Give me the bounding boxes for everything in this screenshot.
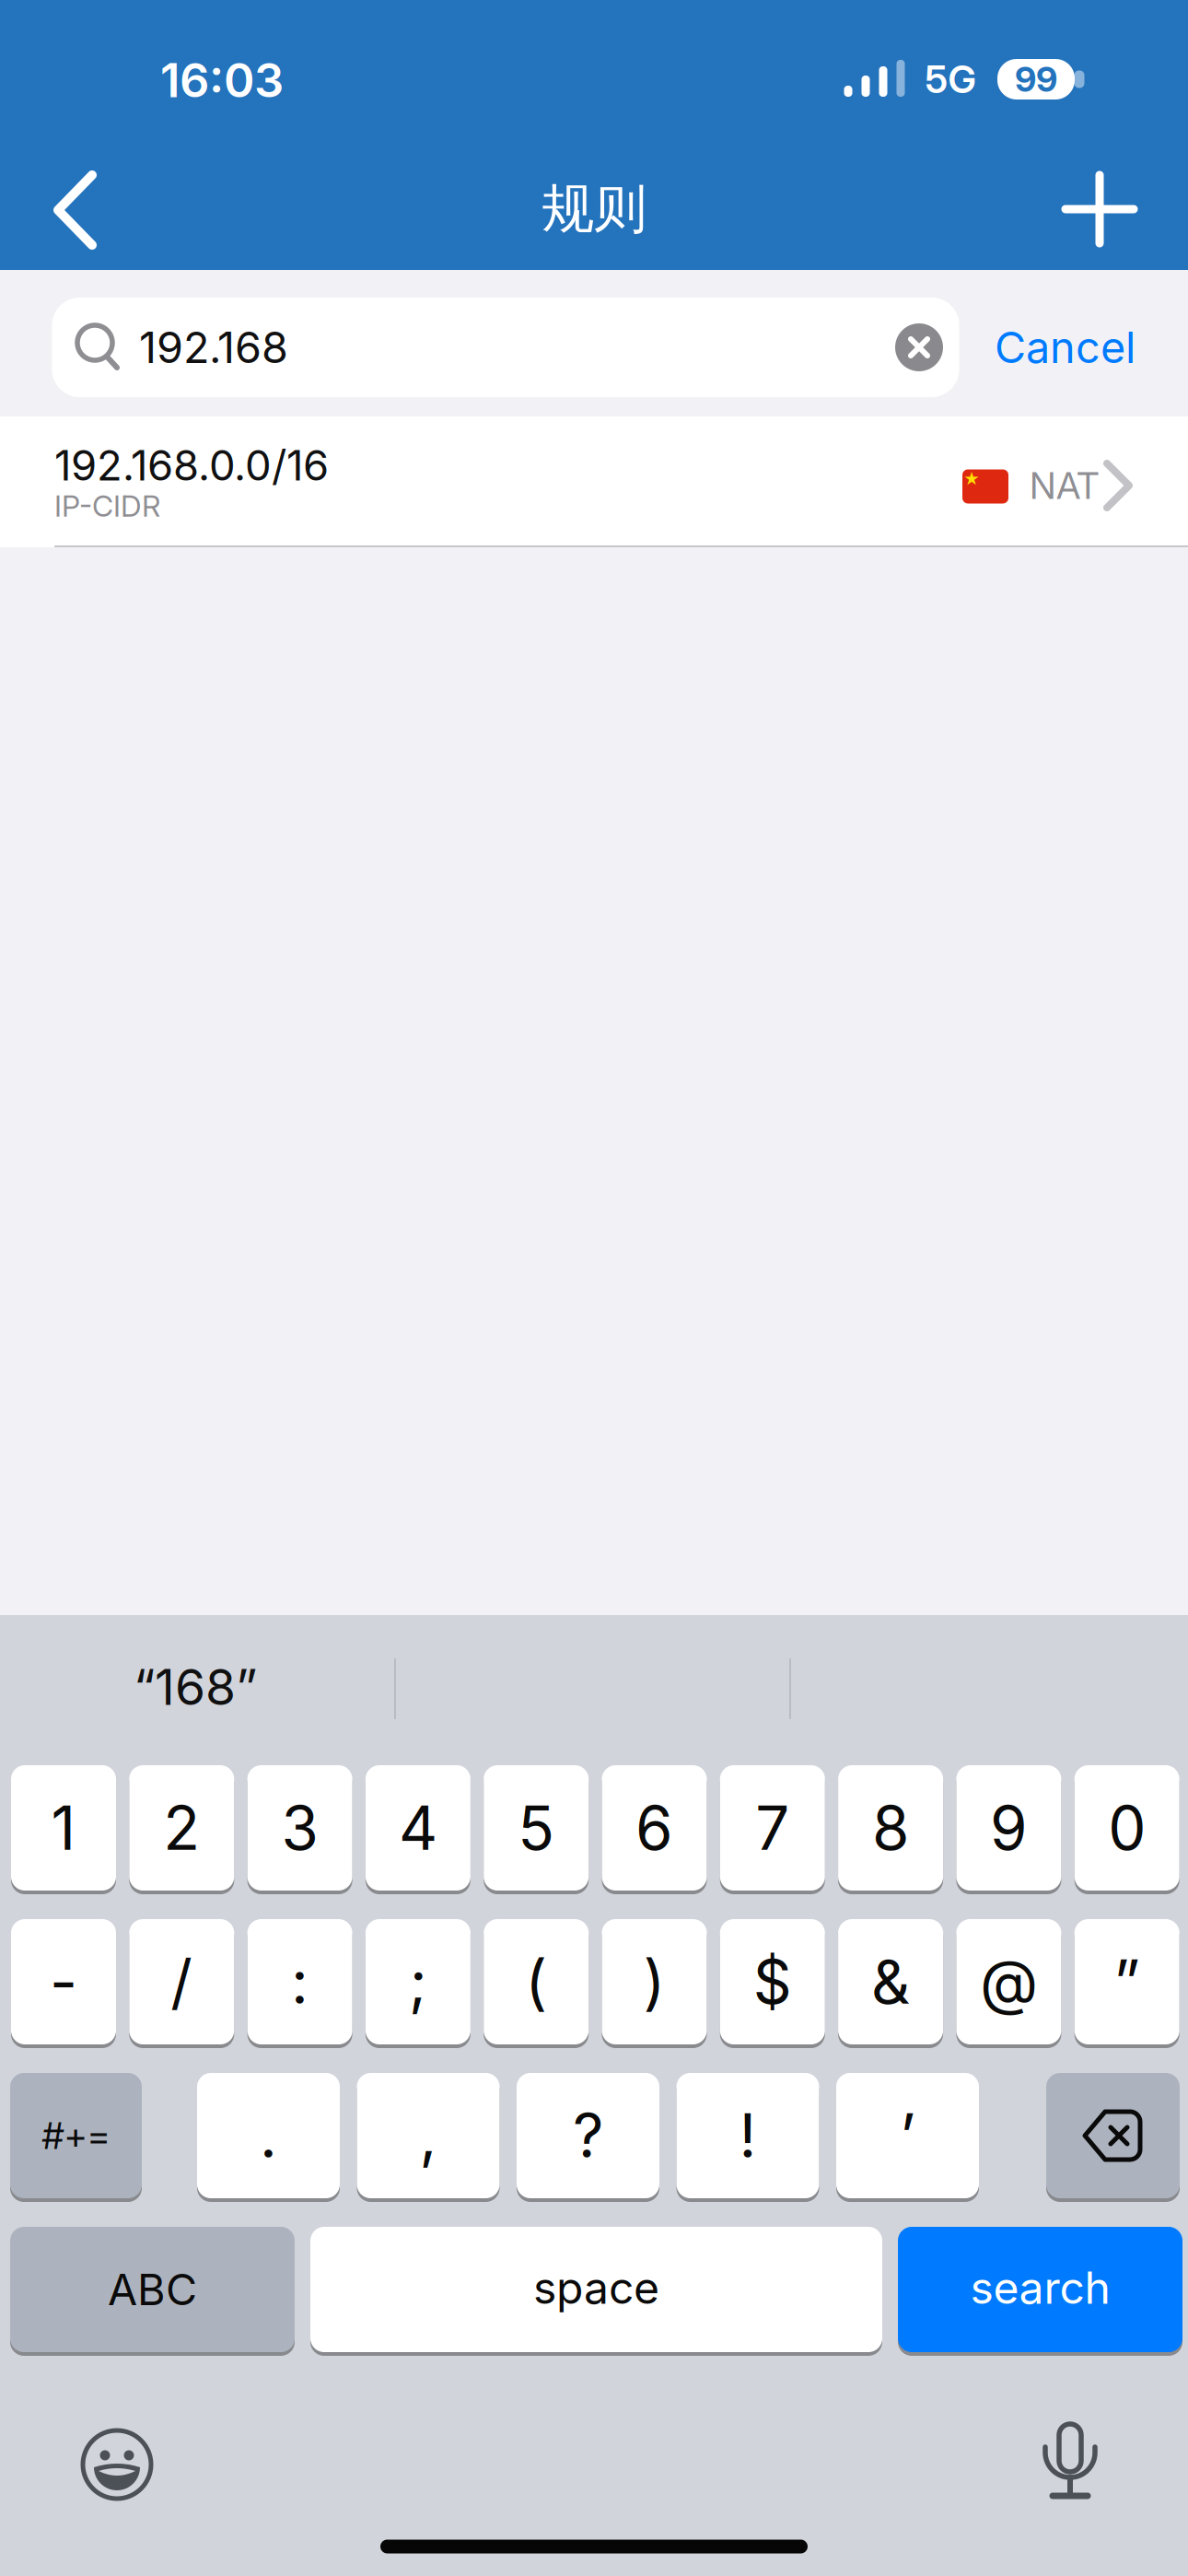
staticText: ( — [525, 1946, 547, 2017]
staticText: space — [533, 2262, 659, 2314]
button[interactable]: ! — [676, 2073, 819, 2198]
button[interactable]: & — [838, 1919, 943, 2044]
button[interactable]: 2 — [129, 1765, 234, 1891]
staticText: 0 — [1108, 1792, 1146, 1863]
staticText: ABC — [108, 2264, 197, 2315]
staticText: 192.168.0.0/16 — [54, 441, 329, 490]
button[interactable]: 7 — [720, 1765, 825, 1891]
staticText: Cancel — [995, 322, 1136, 373]
staticText: 3 — [281, 1792, 318, 1863]
staticText: IP-CIDR — [54, 488, 160, 523]
button[interactable]: Cancel — [896, 322, 1136, 373]
button[interactable] — [1046, 2073, 1180, 2198]
button[interactable]: 6 — [602, 1765, 707, 1891]
button[interactable]: , — [357, 2073, 500, 2198]
staticText: 6 — [635, 1792, 673, 1863]
staticText: 5 — [518, 1792, 555, 1863]
button[interactable]: - — [11, 1919, 116, 2044]
staticText: 规则 — [542, 177, 646, 242]
staticText: NAT — [1030, 464, 1100, 507]
staticText: 5G — [925, 57, 976, 102]
staticText: 4 — [399, 1792, 437, 1863]
button[interactable]: / — [129, 1919, 234, 2044]
button[interactable]: 1 — [11, 1765, 116, 1891]
staticText: ★ — [963, 470, 980, 488]
staticText: $ — [753, 1946, 792, 2017]
staticText: ” — [1114, 1946, 1140, 2017]
button[interactable]: 9 — [956, 1765, 1061, 1891]
button[interactable]: @ — [956, 1919, 1061, 2044]
staticText: , — [419, 2100, 437, 2171]
staticText: - — [50, 1946, 77, 2017]
staticText: 2 — [163, 1792, 200, 1863]
staticText: search — [970, 2262, 1110, 2314]
button[interactable]: ( — [484, 1919, 589, 2044]
staticText: 9 — [990, 1792, 1028, 1863]
button[interactable]: space — [310, 2227, 882, 2352]
staticText: & — [871, 1946, 910, 2017]
button[interactable]: ” — [1074, 1919, 1179, 2044]
button[interactable]: ; — [366, 1919, 471, 2044]
button[interactable] — [895, 323, 943, 371]
button[interactable]: . — [197, 2073, 340, 2198]
button[interactable]: ? — [517, 2073, 659, 2198]
staticText: ’ — [900, 2100, 915, 2171]
button[interactable] — [29, 155, 121, 265]
staticText: . — [260, 2100, 277, 2171]
staticText: 99 — [1015, 59, 1057, 100]
button[interactable]: ABC — [10, 2227, 295, 2352]
staticText: #+= — [42, 2114, 110, 2157]
staticText: ? — [573, 2100, 603, 2171]
staticText: 16:03 — [160, 53, 284, 108]
button[interactable]: 8 — [838, 1765, 943, 1891]
button[interactable]: search — [898, 2227, 1182, 2352]
staticText: @ — [980, 1946, 1038, 2017]
staticText: 7 — [755, 1792, 790, 1863]
button[interactable] — [66, 2414, 168, 2515]
button[interactable] — [0, 416, 1188, 547]
staticText: : — [291, 1946, 309, 2017]
button[interactable]: 0 — [1074, 1765, 1179, 1891]
staticText: 192.168 — [139, 322, 288, 373]
button[interactable]: $ — [720, 1919, 825, 2044]
button[interactable] — [1054, 163, 1146, 255]
button[interactable] — [1019, 2411, 1121, 2512]
button[interactable]: ’ — [836, 2073, 979, 2198]
staticText: / — [171, 1946, 193, 2017]
staticText: ) — [643, 1946, 665, 2017]
button[interactable]: “168” — [134, 1658, 257, 1716]
button[interactable]: 3 — [247, 1765, 352, 1891]
button[interactable]: #+= — [10, 2073, 142, 2198]
button[interactable]: 4 — [366, 1765, 471, 1891]
staticText: “168” — [134, 1658, 257, 1716]
button[interactable]: ) — [602, 1919, 707, 2044]
button[interactable]: : — [247, 1919, 352, 2044]
staticText: 1 — [51, 1792, 76, 1863]
staticText: 8 — [872, 1792, 909, 1863]
button[interactable]: 5 — [484, 1765, 589, 1891]
staticText: ! — [739, 2100, 757, 2171]
staticText: ; — [409, 1946, 427, 2017]
